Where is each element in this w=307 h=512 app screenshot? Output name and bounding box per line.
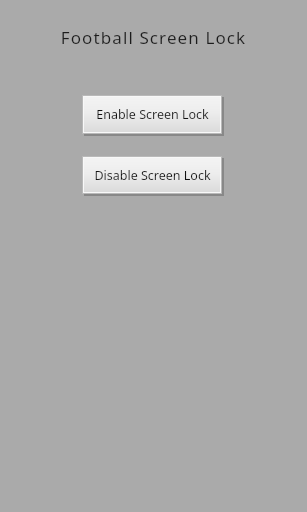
button[interactable]: Disable Screen Lock <box>82 156 222 194</box>
staticText: Football Screen Lock <box>0 26 307 49</box>
button[interactable]: Enable Screen Lock <box>82 95 222 134</box>
staticText: Disable Screen Lock <box>94 167 211 184</box>
staticText: Enable Screen Lock <box>96 106 209 123</box>
